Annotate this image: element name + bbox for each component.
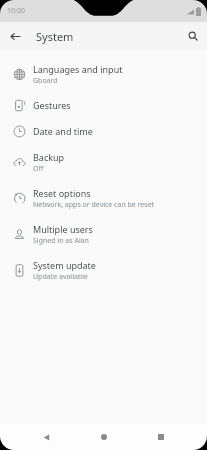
button[interactable]: Gestures (0, 92, 207, 118)
button[interactable]: Home (92, 425, 116, 449)
staticText: Signed in as Alan (33, 236, 89, 246)
staticText: Backup (33, 151, 65, 163)
button[interactable]: Date and time (0, 118, 207, 144)
button[interactable]: Search (185, 28, 201, 44)
button[interactable]: Back (34, 425, 58, 449)
staticText: Reset options (33, 187, 91, 199)
staticText: Gestures (33, 99, 71, 111)
staticText: Gboard (33, 76, 58, 86)
staticText: System update (33, 259, 96, 271)
staticText: 10:00 (7, 6, 25, 16)
staticText: Date and time (33, 125, 93, 137)
button[interactable]: Multiple users (0, 216, 207, 252)
staticText: Languages and input (33, 63, 123, 75)
button[interactable]: Backup (0, 144, 207, 180)
staticText: Update available (33, 272, 88, 282)
button[interactable]: System update (0, 252, 207, 288)
staticText: Network, apps or device can be reset (33, 200, 155, 210)
staticText: Off (33, 164, 44, 174)
button[interactable]: Recents (149, 425, 173, 449)
button[interactable]: Back (7, 28, 23, 44)
button[interactable]: Languages and input (0, 56, 207, 92)
staticText: System (36, 29, 74, 44)
staticText: Multiple users (33, 223, 93, 235)
button[interactable]: Reset options (0, 180, 207, 216)
